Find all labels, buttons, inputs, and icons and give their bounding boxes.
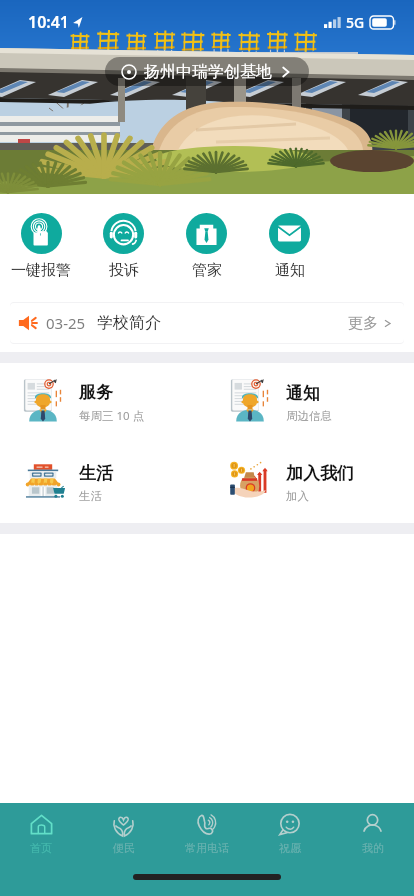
button[interactable]: 通知 — [207, 363, 414, 443]
staticText: 生活 — [79, 489, 102, 503]
staticText: 每周三 10 点 — [79, 408, 145, 424]
staticText: 10:41 — [28, 11, 70, 33]
button[interactable]: 常用电话 — [165, 803, 248, 859]
button[interactable]: 首页 — [0, 803, 82, 859]
button[interactable]: 便民 — [82, 803, 165, 859]
staticText: 5G — [346, 13, 365, 32]
staticText: 一键报警 — [11, 261, 71, 280]
button[interactable]: 加入我们 — [207, 443, 414, 523]
staticText: 更多 — [348, 314, 378, 333]
staticText: 我的 — [362, 841, 384, 855]
staticText: 投诉 — [109, 261, 139, 280]
button[interactable]: 一键报警 — [0, 194, 82, 285]
button[interactable]: 投诉 — [82, 194, 165, 285]
staticText: 首页 — [30, 841, 52, 855]
staticText: 服务 — [79, 382, 113, 403]
staticText: 通知 — [286, 383, 320, 404]
button[interactable]: 扬州中瑞学创基地 — [105, 57, 309, 86]
staticText: 加入我们 — [286, 463, 354, 484]
staticText: 03-25 — [46, 313, 86, 333]
button[interactable]: 通知 — [248, 194, 331, 285]
staticText: 加入 — [286, 489, 309, 503]
staticText: 通知 — [275, 261, 305, 280]
staticText: 常用电话 — [185, 841, 229, 855]
staticText: 扬州中瑞学创基地 — [144, 62, 272, 82]
staticText: 祝愿 — [279, 841, 301, 855]
staticText: 生活 — [79, 463, 113, 484]
staticText: 管家 — [192, 261, 222, 280]
staticText: 学校简介 — [97, 313, 161, 333]
button[interactable]: 我的 — [331, 803, 414, 859]
button[interactable]: 祝愿 — [248, 803, 331, 859]
button[interactable]: 管家 — [165, 194, 248, 285]
button[interactable]: 服务 — [0, 363, 207, 443]
button[interactable]: 03-25 — [10, 303, 404, 343]
button[interactable]: 生活 — [0, 443, 207, 523]
staticText: 便民 — [113, 841, 135, 855]
staticText: 周边信息 — [286, 409, 332, 423]
